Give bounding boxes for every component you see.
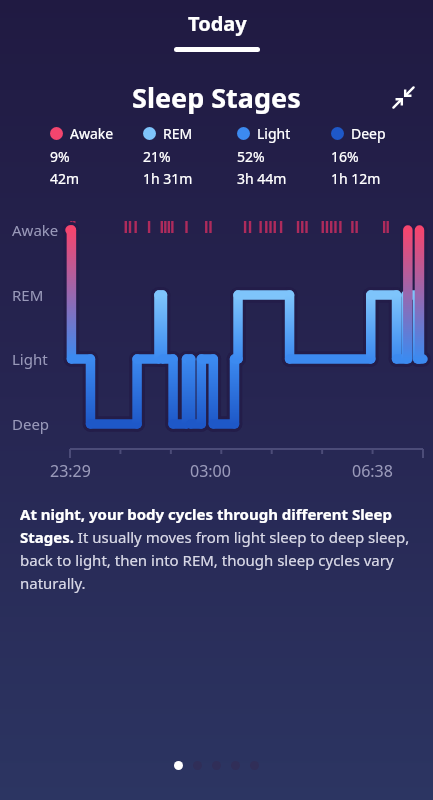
staticText: REM	[12, 285, 44, 305]
button[interactable]: REM	[143, 124, 237, 188]
button[interactable]: Today	[154, 6, 280, 56]
staticText: 16%	[331, 147, 359, 166]
staticText: 3h 44m	[237, 169, 287, 188]
staticText: Sleep Stages	[132, 79, 301, 116]
staticText: 06:38	[352, 460, 393, 482]
staticText: 42m	[50, 169, 80, 188]
staticText: Awake	[70, 124, 114, 143]
staticText: 23:29	[50, 460, 91, 482]
button[interactable]: Light	[237, 124, 331, 188]
staticText: 21%	[143, 147, 171, 166]
staticText: Awake	[12, 220, 59, 240]
staticText: 1h 12m	[331, 169, 381, 188]
button[interactable]: Deep	[331, 124, 425, 188]
staticText: Deep	[12, 414, 50, 434]
staticText: Today	[188, 10, 247, 37]
staticText: At night, your body cycles through diffe…	[20, 504, 413, 593]
staticText: 52%	[237, 147, 265, 166]
staticText: Light	[257, 124, 291, 143]
button[interactable]: Collapse chart	[385, 79, 421, 115]
staticText: 9%	[50, 147, 70, 166]
staticText: 03:00	[190, 460, 231, 482]
staticText: Deep	[351, 124, 386, 143]
staticText: REM	[163, 124, 193, 143]
button[interactable]: Awake	[50, 124, 143, 188]
staticText: Light	[12, 349, 48, 369]
staticText: 1h 31m	[143, 169, 193, 188]
